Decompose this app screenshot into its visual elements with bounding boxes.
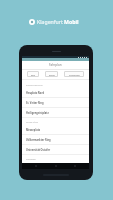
staticText: Klagenfurt bbox=[37, 18, 63, 25]
staticText: Fahrplan bbox=[49, 63, 62, 67]
staticText: St. Veiter Ring bbox=[26, 101, 44, 104]
button[interactable]: Favoriten bbox=[64, 71, 84, 77]
staticText: ZULETZT GESUCHT bbox=[26, 84, 43, 87]
button[interactable]: Klagenfurt bbox=[29, 18, 79, 25]
staticText: IN DER NÄHE bbox=[26, 121, 38, 124]
button[interactable]: St. Veiter Ring bbox=[22, 98, 89, 108]
button[interactable]: Recents bbox=[70, 163, 80, 169]
staticText: Mobil bbox=[64, 18, 79, 25]
staticText: Heiligengeistplatz bbox=[26, 111, 49, 114]
button[interactable]: Bus bbox=[27, 71, 39, 77]
button[interactable]: Heiligengeistplatz bbox=[22, 108, 89, 118]
button[interactable]: Home bbox=[51, 163, 61, 169]
button[interactable]: Völkermarkter Ring bbox=[22, 135, 89, 145]
button[interactable]: Bahn bbox=[45, 71, 58, 77]
staticText: Messeplatz bbox=[26, 128, 40, 131]
button[interactable]: Heuplatz Nord bbox=[22, 88, 89, 98]
staticText: FAVORITEN bbox=[26, 158, 37, 161]
staticText: Völkermarkter Ring bbox=[26, 138, 51, 141]
button[interactable]: Back bbox=[31, 163, 41, 169]
staticText: Bahn bbox=[49, 73, 55, 76]
button[interactable]: Universität Ostufer bbox=[22, 145, 89, 155]
staticText: Heuplatz Nord bbox=[26, 91, 45, 94]
button[interactable]: Messeplatz bbox=[22, 125, 89, 135]
staticText: Universität Ostufer bbox=[26, 148, 51, 151]
staticText: Favoriten bbox=[69, 73, 80, 76]
staticText: Bus bbox=[31, 73, 36, 76]
